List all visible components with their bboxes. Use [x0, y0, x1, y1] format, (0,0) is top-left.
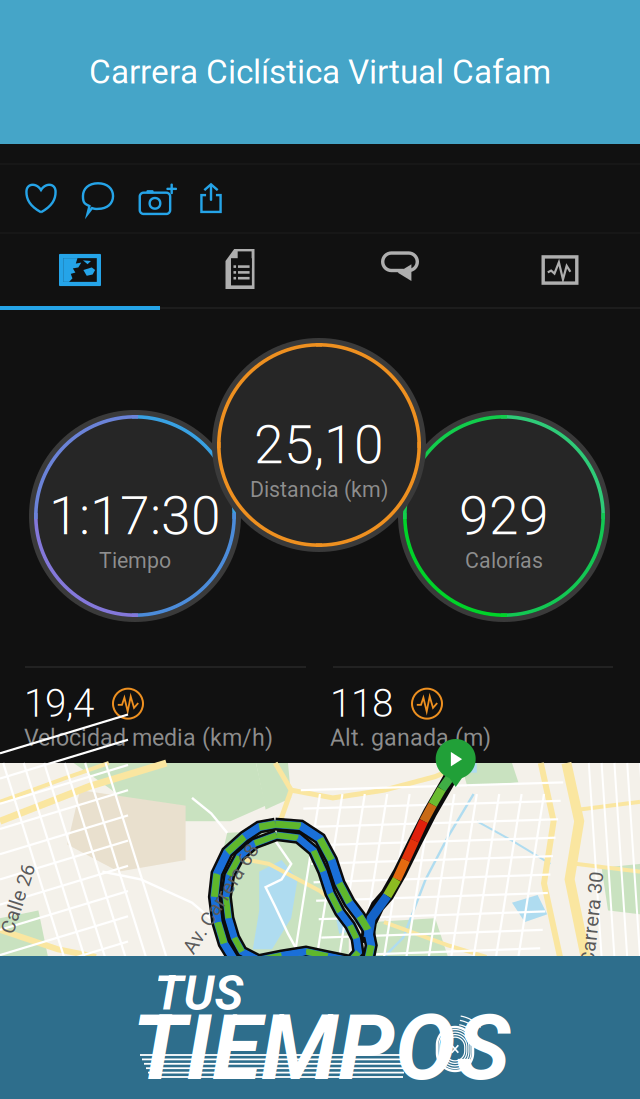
- button[interactable]: Laps: [320, 231, 480, 303]
- button[interactable]: Map: [0, 234, 160, 306]
- staticText: Distancia (km): [250, 477, 388, 502]
- button[interactable]: Details: [160, 233, 320, 305]
- button[interactable]: Share: [183, 167, 239, 229]
- staticText: Velocidad media (km/h): [24, 724, 273, 751]
- staticText: Calorías: [465, 548, 543, 573]
- staticText: Carrera Ciclística Virtual Cafam: [89, 52, 551, 92]
- staticText: 19,4: [24, 681, 94, 726]
- button[interactable]: Graphs: [480, 234, 640, 306]
- staticText: TUS: [154, 965, 243, 1021]
- staticText: Calle 26: [0, 887, 54, 910]
- staticText: Tiempo: [99, 548, 171, 573]
- staticText: 929: [459, 485, 549, 547]
- staticText: Av. Carrera 68: [158, 887, 283, 910]
- staticText: 25,10: [254, 414, 384, 476]
- staticText: TIEMPOS: [132, 995, 510, 1099]
- staticText: Carrera 30: [545, 906, 638, 930]
- staticText: 1:17:30: [49, 485, 221, 547]
- button[interactable]: Like: [13, 167, 69, 229]
- staticText: Alt. ganada (m): [330, 724, 491, 751]
- staticText: 118: [330, 681, 393, 726]
- button[interactable]: Comment: [70, 167, 126, 229]
- button[interactable]: Add photo: [130, 167, 186, 229]
